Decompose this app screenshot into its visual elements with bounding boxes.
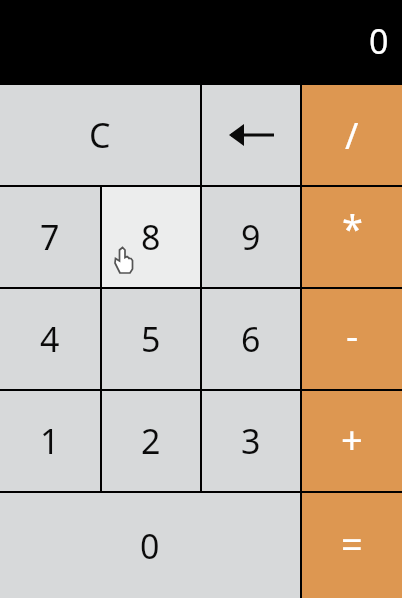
staticText: 6 (241, 316, 261, 362)
staticText: 1 (40, 418, 60, 464)
button[interactable]: 6 (202, 289, 300, 389)
button[interactable]: 0 (0, 493, 300, 598)
staticText: 4 (40, 316, 60, 362)
button[interactable]: Backspace (202, 85, 300, 185)
button[interactable]: * (302, 187, 402, 287)
staticText: - (346, 309, 359, 361)
staticText: 2 (141, 418, 161, 464)
staticText: 0 (140, 523, 160, 569)
staticText: 0 (369, 18, 389, 64)
button[interactable]: 5 (102, 289, 200, 389)
staticText: 5 (141, 316, 161, 362)
button[interactable]: 8 (102, 187, 200, 287)
button[interactable]: 9 (202, 187, 300, 287)
button[interactable]: = (302, 493, 402, 598)
button[interactable]: 2 (102, 391, 200, 491)
staticText: * (342, 202, 363, 254)
staticText: 3 (241, 418, 261, 464)
button[interactable]: 1 (0, 391, 100, 491)
button[interactable]: 4 (0, 289, 100, 389)
button[interactable]: 3 (202, 391, 300, 491)
staticText: 8 (141, 214, 161, 260)
button[interactable]: C (0, 85, 200, 185)
staticText: + (341, 413, 363, 465)
button[interactable]: + (302, 391, 402, 491)
staticText: / (345, 111, 359, 160)
staticText: = (341, 517, 363, 569)
button[interactable]: 7 (0, 187, 100, 287)
button[interactable]: / (302, 85, 402, 185)
staticText: 7 (40, 214, 60, 260)
staticText: C (89, 112, 111, 158)
button[interactable]: - (302, 289, 402, 389)
staticText: 9 (241, 214, 261, 260)
